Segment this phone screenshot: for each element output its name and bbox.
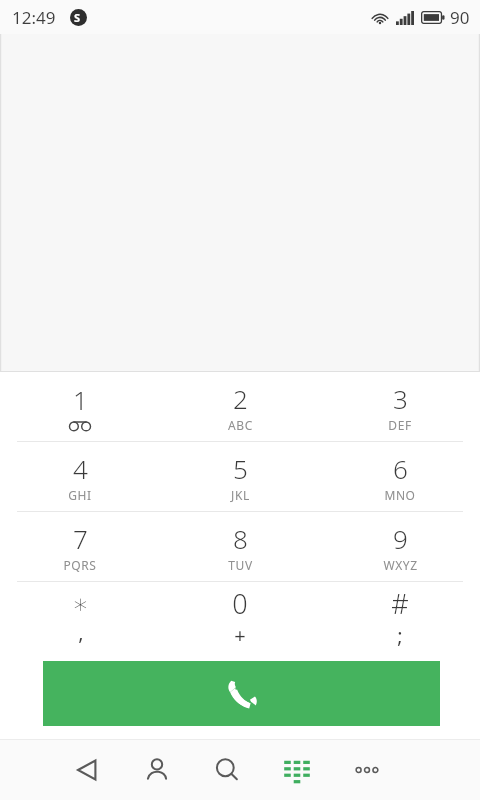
button[interactable]: 6: [320, 442, 480, 511]
staticText: 6: [393, 451, 408, 486]
staticText: JKL: [231, 487, 250, 503]
staticText: DEF: [388, 417, 412, 433]
staticText: ;: [397, 622, 403, 649]
staticText: 8: [233, 521, 248, 556]
button[interactable]: 5: [160, 442, 320, 511]
staticText: S: [74, 10, 81, 25]
button[interactable]: #: [320, 582, 480, 651]
staticText: #: [391, 585, 409, 622]
button[interactable]: 0: [160, 582, 320, 651]
button[interactable]: 1: [0, 372, 160, 441]
button[interactable]: 8: [160, 512, 320, 581]
staticText: 7: [73, 521, 88, 556]
staticText: 3: [393, 381, 408, 416]
staticText: 0: [232, 585, 248, 622]
staticText: 12:49: [12, 6, 56, 29]
button[interactable]: Back: [65, 748, 109, 792]
button[interactable]: More options: [345, 748, 389, 792]
staticText: 9: [393, 521, 408, 556]
button[interactable]: 3: [320, 372, 480, 441]
button[interactable]: ∗: [0, 582, 160, 651]
button[interactable]: Search: [205, 748, 249, 792]
staticText: ABC: [228, 417, 253, 433]
staticText: +: [234, 622, 246, 649]
staticText: ∗: [72, 588, 89, 619]
button[interactable]: 2: [160, 372, 320, 441]
button[interactable]: Call: [43, 661, 440, 726]
staticText: ,: [78, 619, 84, 646]
staticText: MNO: [384, 487, 416, 503]
staticText: WXYZ: [383, 557, 418, 573]
staticText: GHI: [68, 487, 92, 503]
staticText: 1: [73, 382, 88, 417]
staticText: TUV: [228, 557, 253, 573]
button[interactable]: Contacts: [135, 748, 179, 792]
staticText: 5: [233, 451, 248, 486]
staticText: PQRS: [63, 557, 97, 573]
button[interactable]: 4: [0, 442, 160, 511]
button[interactable]: 9: [320, 512, 480, 581]
staticText: 90: [450, 6, 470, 29]
staticText: 2: [233, 381, 248, 416]
button[interactable]: 7: [0, 512, 160, 581]
staticText: 4: [73, 451, 88, 486]
button[interactable]: Dialpad: [275, 748, 319, 792]
